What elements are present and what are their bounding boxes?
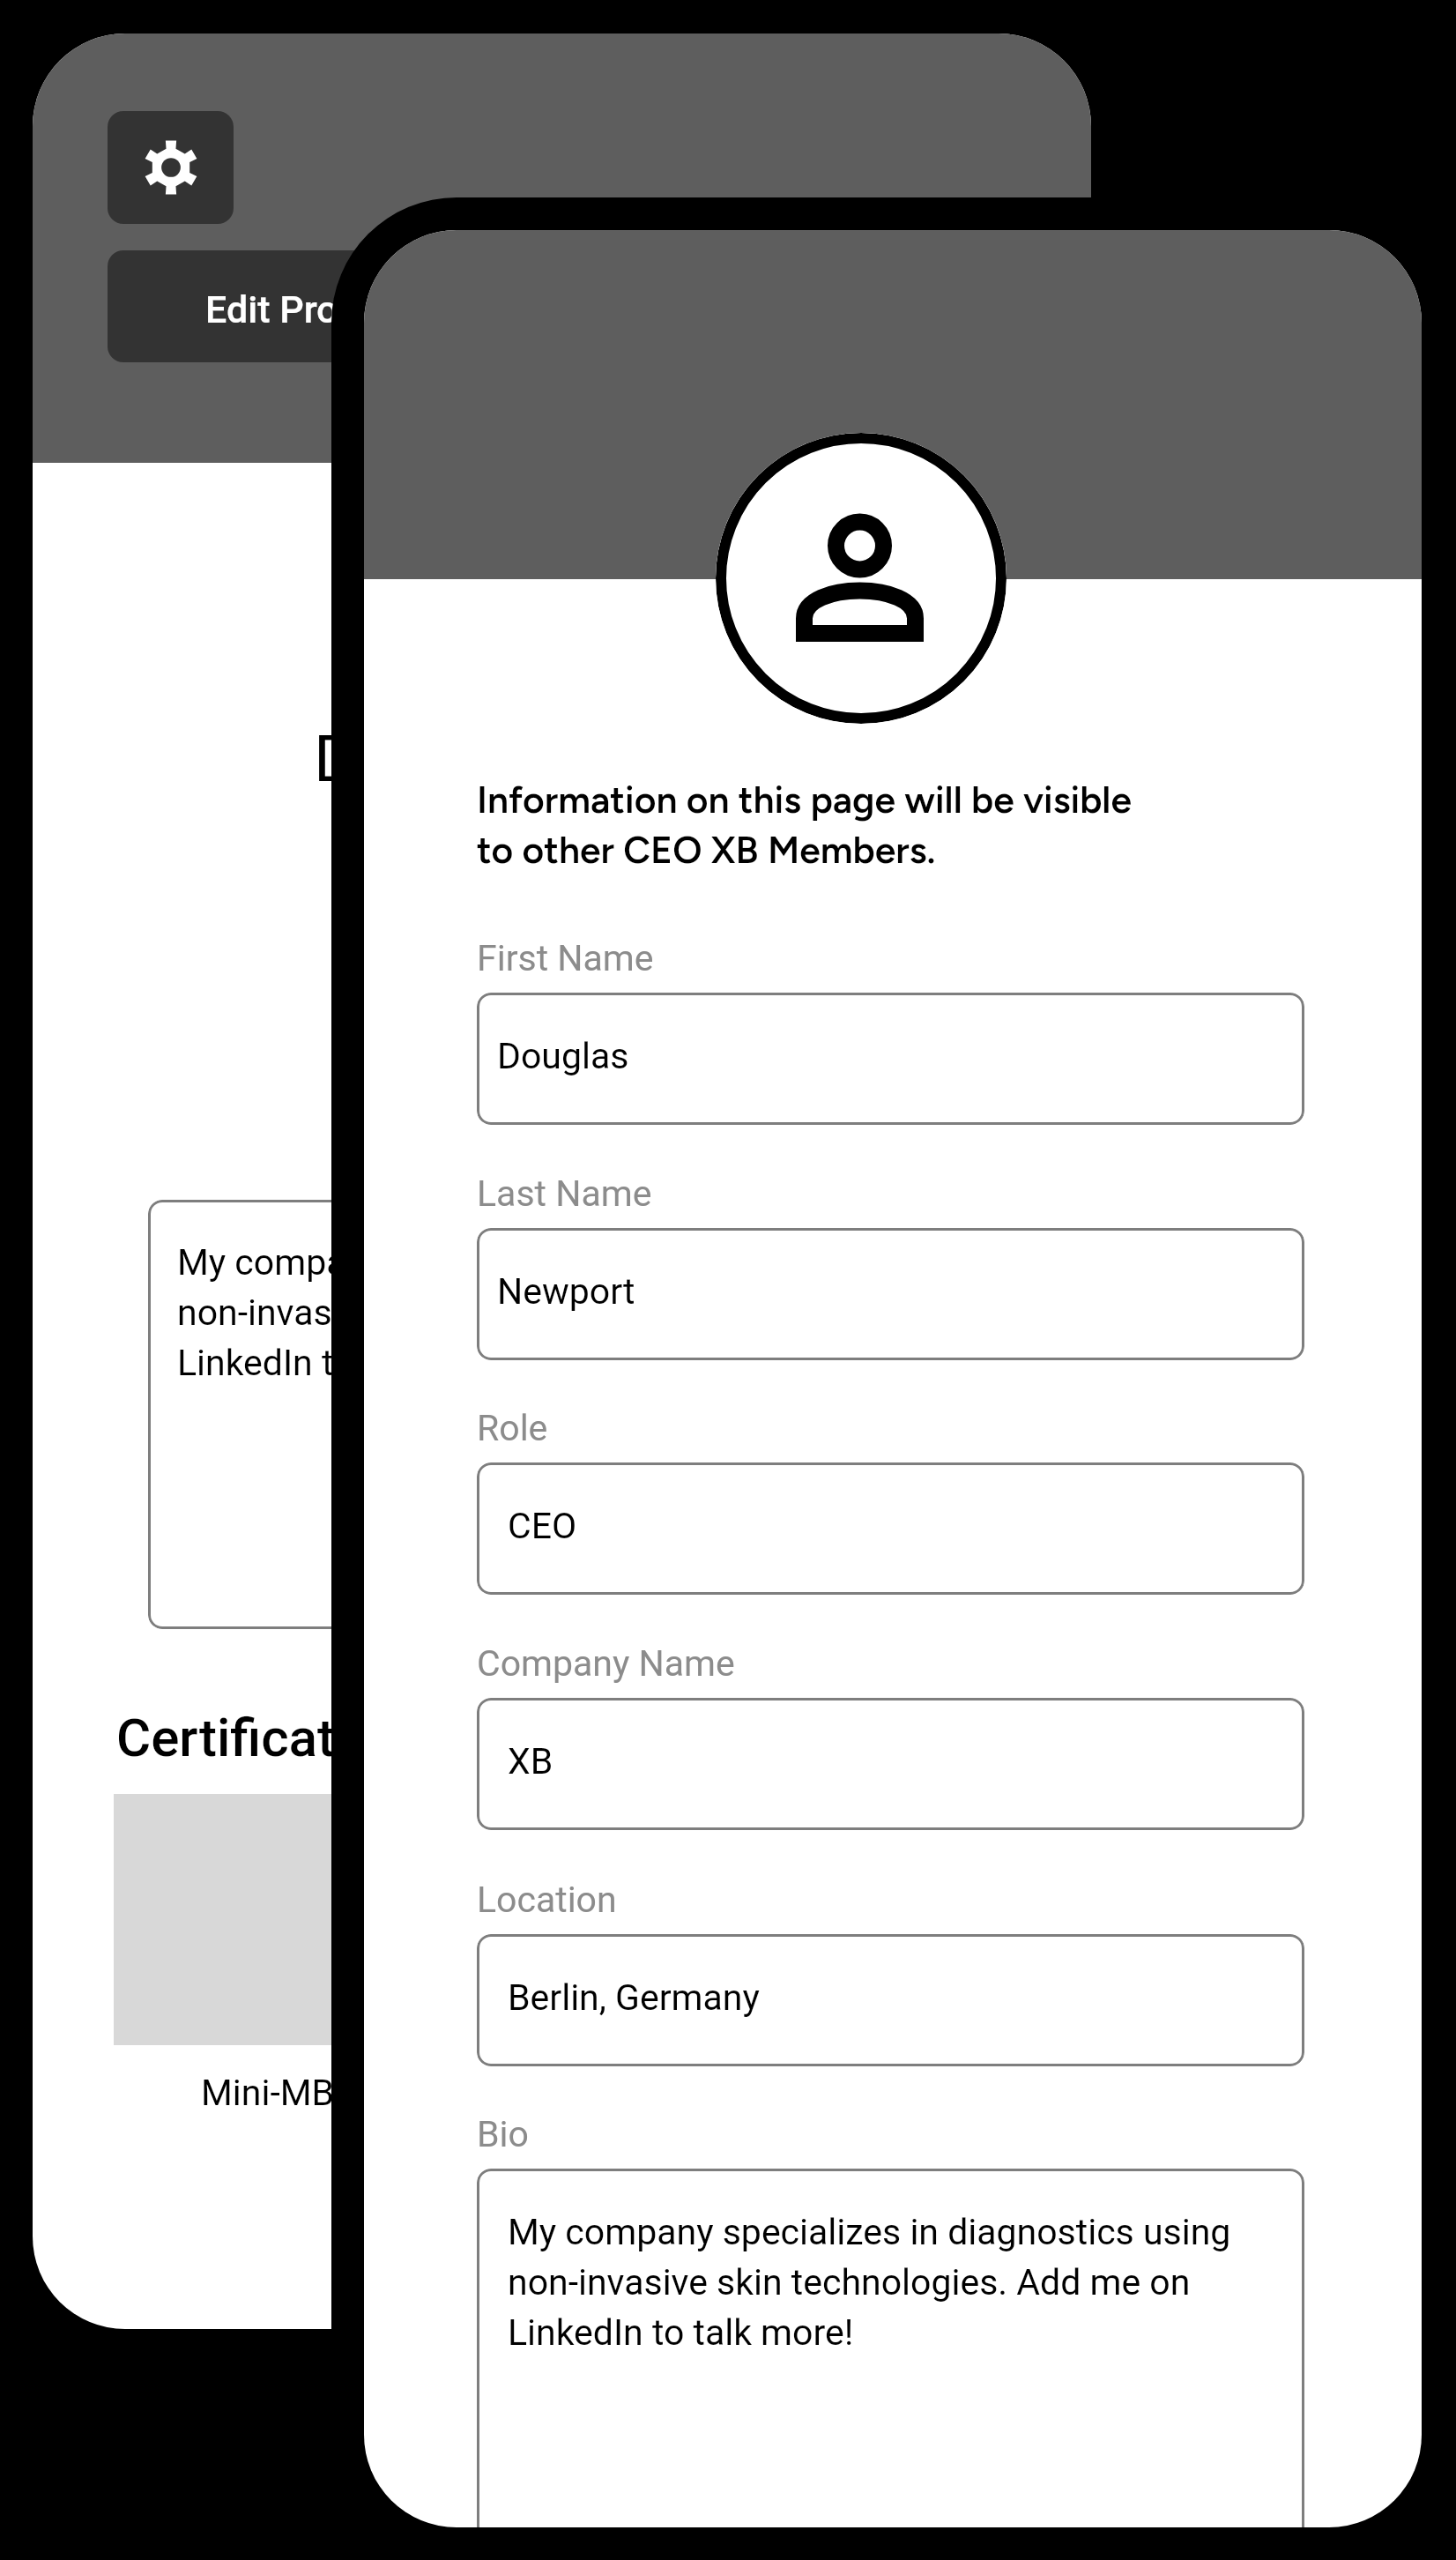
staticText: XB [508, 1740, 553, 1782]
button[interactable]: Edit Profile [108, 250, 488, 362]
button[interactable]: Certificate image [114, 1794, 445, 2045]
button[interactable]: Newport [477, 1228, 1304, 1360]
staticText: My company specializes in diagnostics us… [177, 1241, 935, 1384]
staticText: Information on this page will be visible… [477, 778, 1132, 873]
button[interactable]: XB [477, 1698, 1304, 1830]
button[interactable]: Profile photo [716, 433, 1007, 724]
staticText: CEO [508, 1505, 577, 1547]
staticText: Newport [497, 1270, 635, 1313]
staticText: Last Name [477, 1172, 652, 1215]
staticText: Douglas [497, 1035, 629, 1077]
staticText: Mini-MBA [201, 2072, 358, 2114]
staticText: Certificates [116, 1707, 391, 1768]
staticText: Location [477, 1879, 617, 1921]
button[interactable]: Settings [108, 111, 234, 224]
staticText: Role [477, 1407, 548, 1449]
staticText: Bio [477, 2113, 529, 2155]
staticText: Berlin, Germany [508, 1976, 760, 2019]
button[interactable]: My company specializes in diagnostics us… [477, 2169, 1304, 2527]
button[interactable]: Berlin, Germany [477, 1934, 1304, 2066]
button[interactable]: Douglas [477, 993, 1304, 1125]
button[interactable]: CEO [477, 1462, 1304, 1595]
staticText: My company specializes in diagnostics us… [508, 2211, 1281, 2354]
staticText: Edit Profile [205, 287, 390, 331]
staticText: Company Name [477, 1642, 735, 1685]
staticText: First Name [477, 937, 654, 979]
staticText: Douglas Newport [314, 721, 810, 797]
